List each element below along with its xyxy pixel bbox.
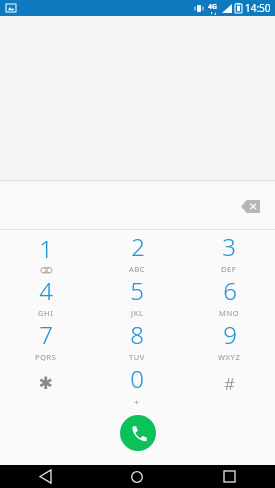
button[interactable]: 9: [183, 318, 275, 362]
button[interactable]: 4: [0, 274, 91, 318]
button[interactable]: 6: [183, 274, 275, 318]
staticText: 14:50: [245, 1, 271, 15]
staticText: MNO: [219, 308, 240, 318]
button[interactable]: #: [183, 362, 275, 404]
button[interactable]: 5: [91, 274, 183, 318]
staticText: 3: [222, 230, 236, 263]
staticText: 5: [130, 274, 144, 307]
staticText: 7: [39, 318, 53, 351]
staticText: ✱: [38, 373, 53, 393]
button[interactable]: Call: [120, 415, 156, 451]
staticText: 9: [223, 318, 237, 351]
button[interactable]: 3: [183, 230, 275, 274]
staticText: 4G: [208, 2, 218, 12]
button[interactable]: Recent apps: [183, 465, 275, 488]
staticText: 0: [130, 362, 144, 395]
staticText: #: [224, 372, 235, 395]
button[interactable]: 0: [91, 362, 183, 404]
button[interactable]: Home: [91, 465, 183, 488]
staticText: PQRS: [35, 352, 57, 362]
button[interactable]: 2: [91, 230, 183, 274]
staticText: TUV: [129, 352, 145, 362]
button[interactable]: 8: [91, 318, 183, 362]
button[interactable]: ✱: [0, 362, 91, 404]
staticText: 1: [39, 232, 53, 265]
button[interactable]: Back: [0, 465, 91, 488]
staticText: JKL: [131, 308, 144, 318]
staticText: DEF: [221, 264, 237, 274]
staticText: 2: [131, 230, 145, 263]
button[interactable]: Backspace: [235, 191, 265, 221]
staticText: 6: [223, 274, 237, 307]
button[interactable]: 1: [0, 230, 91, 274]
staticText: 8: [130, 318, 144, 351]
button[interactable]: 7: [0, 318, 91, 362]
staticText: 4: [39, 274, 53, 307]
staticText: WXYZ: [218, 352, 241, 362]
staticText: ABC: [129, 264, 146, 274]
staticText: +: [134, 396, 140, 404]
staticText: GHI: [38, 308, 54, 318]
